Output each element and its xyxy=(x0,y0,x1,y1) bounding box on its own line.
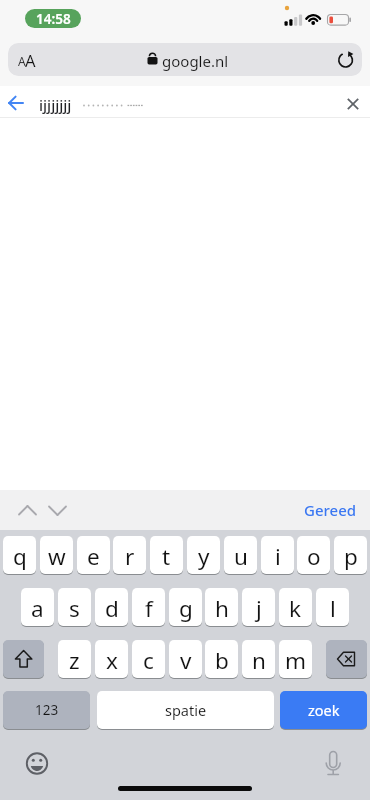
button[interactable]: m xyxy=(279,640,312,678)
staticText: h xyxy=(215,593,229,624)
button[interactable]: k xyxy=(279,588,312,626)
button[interactable] xyxy=(315,745,351,781)
button[interactable]: a xyxy=(21,588,54,626)
staticText: spatie xyxy=(165,700,207,720)
button[interactable]: q xyxy=(3,536,36,574)
staticText: o xyxy=(307,541,321,572)
staticText: b xyxy=(215,645,229,676)
staticText: k xyxy=(289,593,302,624)
staticText: g xyxy=(179,593,193,624)
staticText: x xyxy=(106,645,118,676)
button[interactable]: 123 xyxy=(3,691,90,729)
button[interactable]: x xyxy=(95,640,128,678)
button[interactable] xyxy=(43,496,70,523)
button[interactable]: z xyxy=(58,640,91,678)
staticText: A xyxy=(25,49,36,71)
staticText: A xyxy=(18,53,26,69)
button[interactable]: b xyxy=(205,640,238,678)
button[interactable]: r xyxy=(113,536,146,574)
staticText: ijjjjjjj xyxy=(39,95,72,115)
staticText: e xyxy=(87,541,100,572)
button[interactable]: l xyxy=(316,588,349,626)
staticText: 14:58 xyxy=(36,10,71,28)
button[interactable] xyxy=(338,88,368,116)
button[interactable]: i xyxy=(261,536,294,574)
button[interactable]: h xyxy=(205,588,238,626)
button[interactable]: f xyxy=(132,588,165,626)
staticText: t xyxy=(162,541,171,572)
staticText: z xyxy=(69,645,80,676)
button[interactable]: j xyxy=(242,588,275,626)
staticText: i xyxy=(275,541,281,572)
button[interactable]: s xyxy=(58,588,91,626)
staticText: s xyxy=(69,593,80,624)
staticText: v xyxy=(180,645,192,676)
staticText: n xyxy=(252,645,266,676)
staticText: zoek xyxy=(308,700,340,720)
staticText: d xyxy=(105,593,119,624)
staticText: Gereed xyxy=(304,500,357,520)
staticText: u xyxy=(234,541,248,572)
button[interactable]: Gereed xyxy=(295,494,365,526)
button[interactable]: v xyxy=(169,640,202,678)
button[interactable] xyxy=(2,88,34,116)
button[interactable]: g xyxy=(169,588,202,626)
staticText: google.nl xyxy=(162,51,229,71)
button[interactable]: d xyxy=(95,588,128,626)
button[interactable]: t xyxy=(150,536,183,574)
button[interactable]: n xyxy=(242,640,275,678)
staticText: a xyxy=(31,593,44,624)
button[interactable] xyxy=(326,640,367,678)
button[interactable]: o xyxy=(297,536,330,574)
staticText: w xyxy=(48,541,66,572)
staticText: l xyxy=(330,593,336,624)
staticText: p xyxy=(344,541,358,572)
button[interactable]: 14:58 xyxy=(25,9,81,28)
button[interactable] xyxy=(8,43,362,76)
button[interactable] xyxy=(12,496,39,523)
staticText: y xyxy=(198,541,210,572)
button[interactable]: y xyxy=(187,536,220,574)
staticText: m xyxy=(285,645,307,676)
button[interactable]: c xyxy=(132,640,165,678)
button[interactable]: zoek xyxy=(280,691,367,729)
staticText: 123 xyxy=(35,701,59,719)
button[interactable]: w xyxy=(40,536,73,574)
button[interactable]: p xyxy=(334,536,367,574)
staticText: f xyxy=(145,593,153,624)
button[interactable]: e xyxy=(77,536,110,574)
staticText: q xyxy=(13,541,27,572)
button[interactable] xyxy=(3,640,44,678)
staticText: j xyxy=(256,593,262,624)
button[interactable]: u xyxy=(224,536,257,574)
button[interactable] xyxy=(10,46,46,73)
button[interactable]: spatie xyxy=(97,691,274,729)
staticText: c xyxy=(143,645,154,676)
button[interactable] xyxy=(332,46,360,73)
button[interactable] xyxy=(19,745,55,781)
staticText: r xyxy=(125,541,135,572)
